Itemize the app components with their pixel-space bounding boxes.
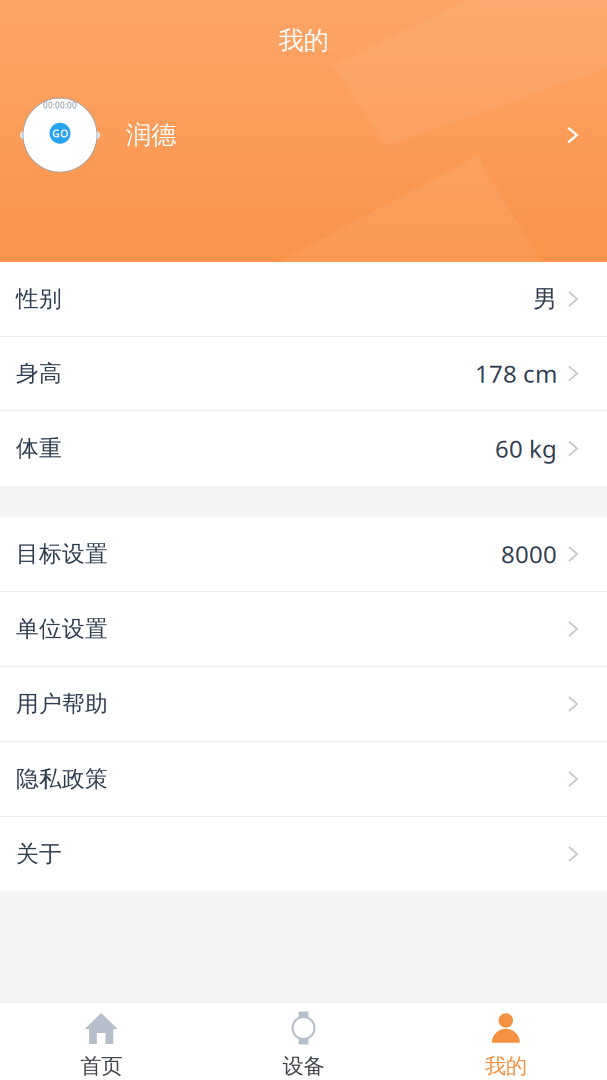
staticText: 隐私政策: [16, 765, 108, 793]
staticText: 用户帮助: [16, 690, 108, 718]
button[interactable]: 关于: [0, 817, 607, 891]
staticText: 60 kg: [495, 433, 557, 464]
staticText: 我的: [278, 25, 328, 56]
button[interactable]: 用户帮助: [0, 667, 607, 741]
staticText: 首页: [80, 1053, 122, 1079]
staticText: 体重: [16, 435, 62, 462]
staticText: 我的: [485, 1053, 527, 1079]
button[interactable]: 首页: [0, 1003, 202, 1080]
button[interactable]: 设备: [202, 1003, 405, 1080]
staticText: 性别: [16, 285, 62, 313]
staticText: 目标设置: [16, 540, 108, 568]
staticText: 单位设置: [16, 615, 108, 643]
staticText: 关于: [16, 840, 62, 868]
staticText: 身高: [16, 360, 62, 387]
button[interactable]: 身高: [0, 337, 607, 410]
staticText: 设备: [282, 1053, 324, 1079]
staticText: 8000: [501, 538, 557, 570]
button[interactable]: 单位设置: [0, 592, 607, 666]
staticText: 178 cm: [475, 358, 557, 389]
button[interactable]: 我的: [405, 1003, 607, 1080]
button[interactable]: 目标设置: [0, 517, 607, 591]
button[interactable]: 隐私政策: [0, 742, 607, 816]
button[interactable]: 性别: [0, 262, 607, 336]
staticText: 润德: [126, 120, 176, 151]
button[interactable]: 00:00:00: [0, 97, 607, 173]
staticText: 男: [533, 284, 557, 314]
staticText: GO: [52, 126, 68, 140]
staticText: 00:00:00: [43, 100, 77, 111]
button[interactable]: 体重: [0, 411, 607, 486]
